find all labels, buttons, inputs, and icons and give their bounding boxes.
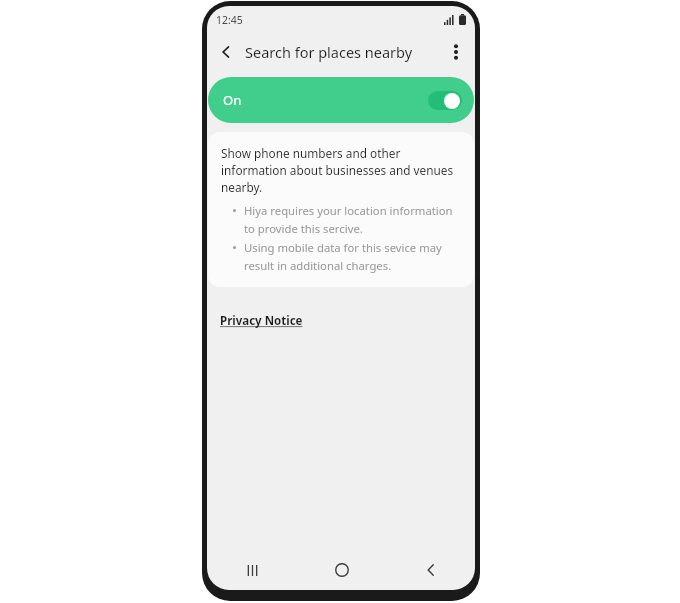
staticText: Search for places nearby <box>245 42 413 62</box>
staticText: Hiya requires your location information … <box>244 203 461 236</box>
staticText: On <box>223 91 242 109</box>
button[interactable]: Back <box>386 550 475 590</box>
button[interactable]: On <box>208 77 474 123</box>
button[interactable]: Recents <box>207 550 297 590</box>
button[interactable]: Home <box>297 550 386 590</box>
staticText: 12:45 <box>216 13 243 27</box>
staticText: Using mobile data for this sevice may re… <box>244 240 461 273</box>
button[interactable]: More options <box>441 37 471 67</box>
button[interactable]: Back <box>211 37 241 67</box>
button[interactable]: Privacy Notice <box>220 311 303 331</box>
staticText: Show phone numbers and other information… <box>221 145 461 195</box>
